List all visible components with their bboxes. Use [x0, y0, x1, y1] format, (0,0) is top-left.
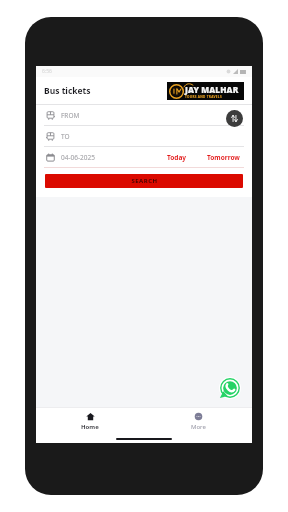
staticText: 04-06-2025	[61, 153, 95, 162]
staticText: Tomorrow	[207, 153, 240, 162]
button[interactable]: Home	[36, 408, 144, 434]
button[interactable]: Tomorrow	[205, 153, 242, 162]
button[interactable]: TO	[36, 126, 252, 146]
staticText: Home	[81, 423, 99, 431]
button[interactable]: FROM	[36, 105, 252, 125]
button[interactable]: 04-06-2025	[61, 153, 95, 162]
button[interactable]: Jay Malhar Tours and Travels	[167, 82, 244, 100]
staticText: More	[191, 423, 206, 431]
staticText: SEARCH	[131, 177, 158, 185]
staticText: Bus tickets	[44, 85, 91, 97]
staticText: TOURS AND TRAVELS	[185, 95, 222, 99]
button[interactable]: More	[144, 408, 252, 434]
button[interactable]: Today	[165, 153, 189, 162]
button[interactable]: SEARCH	[45, 174, 243, 188]
staticText: JAY MALHAR	[185, 84, 239, 95]
staticText: 6:56	[42, 68, 52, 75]
staticText: TO	[61, 132, 70, 141]
staticText: FROM	[61, 111, 80, 120]
button[interactable]: Swap source and destination	[226, 110, 243, 127]
staticText: Today	[167, 153, 187, 162]
button[interactable]: Chat on WhatsApp	[219, 377, 241, 399]
